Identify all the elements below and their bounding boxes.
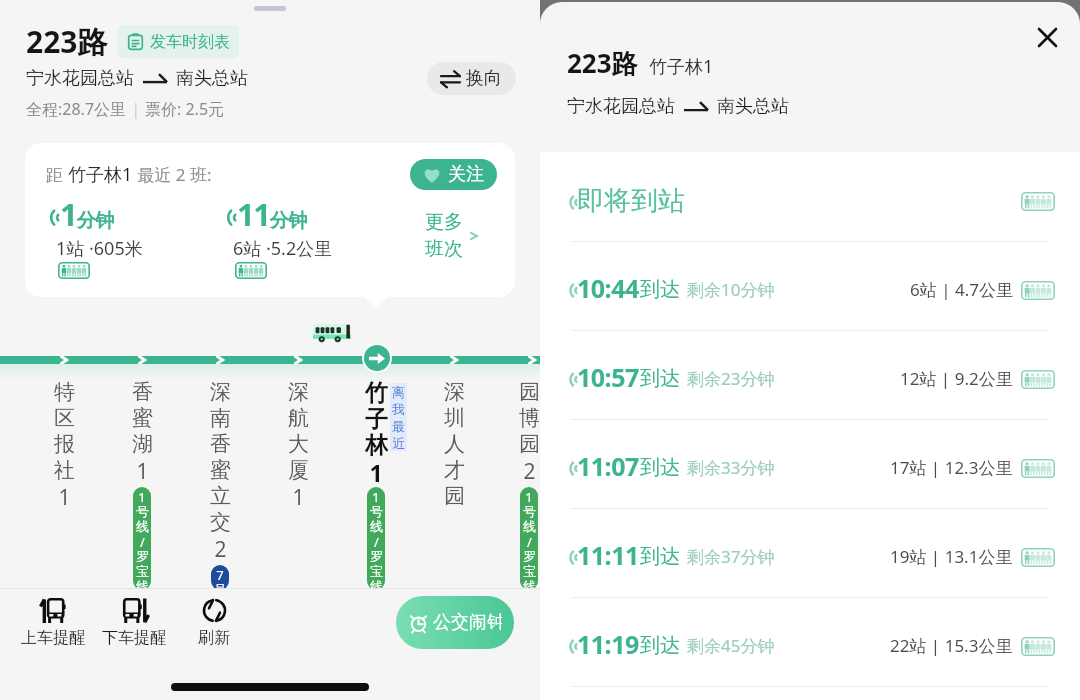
staticText: 线 [136, 578, 149, 590]
staticText: 南头总站 [717, 95, 789, 118]
staticText: 我 [392, 401, 405, 417]
staticText: 南 [210, 405, 231, 431]
staticText: 号 [214, 581, 227, 590]
button[interactable]: 换向 [427, 62, 516, 95]
staticText: 换向 [466, 67, 502, 90]
button[interactable]: 发车时刻表 [118, 25, 239, 58]
button[interactable]: Current position [364, 345, 390, 371]
staticText: 关注 [448, 163, 484, 186]
staticText: 子 [365, 405, 388, 431]
staticText: 园 [519, 379, 540, 405]
staticText: 1 [58, 483, 71, 509]
button[interactable]: 更多 [425, 210, 479, 261]
staticText: / [374, 533, 379, 548]
staticText: 蜜 [210, 457, 231, 483]
button[interactable]: 11:11 [540, 509, 1080, 597]
staticText: 1 [60, 193, 77, 235]
staticText: 6站 | 4.7公里 [910, 278, 1013, 301]
staticText: 罗 [370, 548, 383, 563]
staticText: 竹 [365, 379, 388, 405]
staticText: 刷新 [198, 628, 230, 648]
staticText: 1 [525, 488, 533, 503]
button[interactable]: 园 [493, 375, 565, 590]
staticText: 宁水花园总站 [26, 67, 134, 90]
staticText: 圳 [444, 405, 465, 431]
staticText: 特 [54, 379, 75, 405]
staticText: 博 [519, 405, 540, 431]
staticText: 交 [210, 509, 231, 535]
staticText: 223路 [567, 45, 638, 81]
staticText: 到达 [640, 366, 680, 391]
button[interactable]: 公交闹钟 [396, 596, 514, 649]
staticText: 离 [392, 384, 405, 400]
staticText: 线 [523, 518, 536, 533]
staticText: 6站 ·5.2公里 [233, 236, 333, 261]
staticText: 即将到站 [577, 184, 685, 218]
staticText: 湖 [132, 431, 153, 457]
staticText: 11:19 [577, 627, 639, 661]
button[interactable]: Close [1025, 15, 1069, 59]
staticText: 园 [444, 483, 465, 509]
staticText: 立 [210, 483, 231, 509]
staticText: 社 [54, 457, 75, 483]
staticText: 1 [372, 488, 380, 503]
staticText: 最近 2 班: [133, 163, 212, 186]
button[interactable]: 10:44 [540, 242, 1080, 330]
staticText: 分钟 [77, 209, 114, 233]
staticText: 2 [523, 457, 536, 483]
staticText: 园 [519, 431, 540, 457]
staticText: 1 [292, 483, 305, 509]
staticText: 剩余10分钟 [687, 278, 775, 301]
button[interactable]: 上车提醒 [20, 598, 86, 648]
staticText: 南头总站 [176, 67, 248, 90]
staticText: 剩余33分钟 [687, 456, 775, 479]
staticText: 罗 [136, 548, 149, 563]
staticText: 香 [132, 379, 153, 405]
staticText: 2 [214, 535, 227, 561]
staticText: 线 [370, 578, 383, 590]
staticText: 罗 [523, 548, 536, 563]
staticText: 宝 [523, 563, 536, 578]
button[interactable]: 11:19 [540, 598, 1080, 686]
staticText: 上车提醒 [21, 628, 85, 648]
staticText: 大 [288, 431, 309, 457]
button[interactable]: 下车提醒 [101, 598, 167, 648]
button[interactable]: 关注 [410, 159, 497, 190]
staticText: 宁水花园总站 [567, 95, 675, 118]
staticText: 11:07 [577, 449, 639, 483]
staticText: 剩余23分钟 [687, 367, 775, 390]
button[interactable]: 刷新 [181, 598, 247, 648]
staticText: 1 [138, 488, 146, 503]
staticText: 竹子林1 [68, 162, 133, 187]
staticText: 1 [136, 457, 149, 483]
staticText: 10:44 [577, 271, 639, 305]
staticText: 深 [288, 379, 309, 405]
staticText: 剩余37分钟 [687, 545, 775, 568]
staticText: 深 [210, 379, 231, 405]
staticText: 1 [369, 457, 383, 483]
button[interactable]: 11:07 [540, 420, 1080, 508]
staticText: 号 [370, 503, 383, 518]
button[interactable]: 深 [181, 375, 259, 590]
button[interactable]: 即将到站 [540, 152, 1080, 241]
staticText: 票价: 2.5元 [145, 98, 225, 120]
button[interactable]: 竹 [337, 375, 415, 590]
staticText: 11 [237, 193, 270, 235]
staticText: 宝 [136, 563, 149, 578]
button[interactable]: 特 [25, 375, 103, 590]
staticText: 17站 | 12.3公里 [890, 456, 1013, 479]
staticText: 10:57 [577, 360, 639, 394]
staticText: 到达 [640, 277, 680, 302]
staticText: 更多 [425, 210, 463, 234]
staticText: 分钟 [270, 209, 307, 233]
button[interactable]: 深 [415, 375, 493, 590]
button[interactable]: 10:57 [540, 331, 1080, 419]
button[interactable]: 深 [259, 375, 337, 590]
staticText: 22站 | 15.3公里 [890, 634, 1013, 657]
staticText: 航 [288, 405, 309, 431]
staticText: 1站 ·605米 [56, 236, 143, 261]
staticText: 12站 | 9.2公里 [900, 367, 1013, 390]
button[interactable]: 香 [103, 375, 181, 590]
staticText: / [140, 533, 145, 548]
staticText: 发车时刻表 [150, 32, 230, 52]
